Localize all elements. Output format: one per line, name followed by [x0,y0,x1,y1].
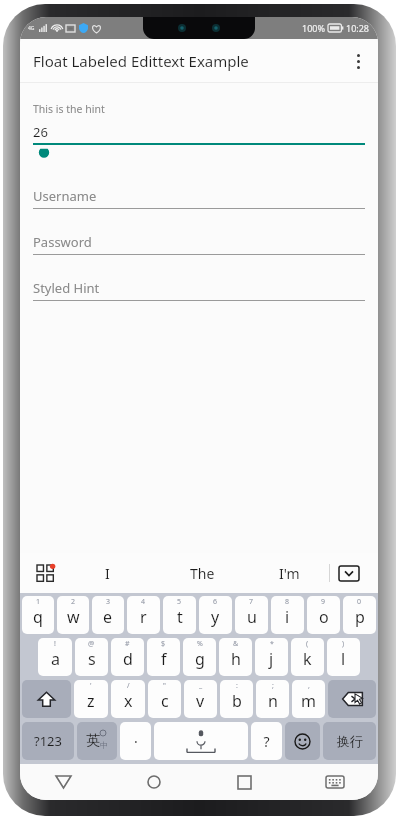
staticText: I [105,564,110,583]
staticText: 3 [106,597,111,607]
staticText: * [270,639,274,649]
staticText: ! [54,639,56,649]
staticText: 8 [285,597,290,607]
staticText: h [231,648,241,670]
staticText: w [67,606,80,628]
staticText: t [177,606,183,628]
staticText: 10:28 [346,22,370,34]
button[interactable]: ) [327,638,360,676]
staticText: Styled Hint [33,279,100,297]
staticText: 换行 [337,733,363,749]
button[interactable]: Recents [223,764,265,800]
staticText: i [285,606,290,628]
button[interactable]: & [219,638,252,676]
button[interactable]: % [183,638,216,676]
staticText: b [232,690,242,712]
staticText: 9 [321,597,326,607]
button[interactable]: @ [75,638,108,676]
button[interactable]: ?123 [22,722,74,760]
button[interactable]: I [60,553,155,593]
button[interactable]: 4 [127,596,160,634]
staticText: 英 [86,732,100,750]
staticText: : [236,681,238,691]
button[interactable]: " [148,680,181,718]
staticText: ?123 [34,732,62,750]
staticText: ) [342,639,345,649]
staticText: & [233,639,239,649]
staticText: f [161,648,167,670]
staticText: a [51,648,60,670]
staticText: ; [272,681,274,691]
button[interactable]: 2 [57,596,89,634]
staticText: j [269,648,274,670]
button[interactable]: The [155,553,249,593]
button[interactable]: Back [42,764,84,800]
button[interactable]: $ [147,638,180,676]
staticText: z [87,690,95,712]
staticText: 5 [177,597,182,607]
button[interactable]: # [111,638,144,676]
button[interactable]: ! [38,638,72,676]
button[interactable]: 9 [307,596,340,634]
button[interactable]: 0 [343,596,376,634]
button[interactable]: Language [77,722,117,760]
staticText: 6 [213,597,218,607]
staticText: m [301,690,316,712]
button[interactable]: Space [154,722,248,760]
button[interactable]: Password [33,233,365,255]
button[interactable]: 8 [271,596,304,634]
button[interactable]: · [120,722,151,760]
staticText: Float Labeled Edittext Example [33,51,249,71]
staticText: 100% [302,22,325,34]
button[interactable]: Shift [22,680,71,718]
button[interactable]: 3 [92,596,124,634]
button[interactable]: 6 [199,596,232,634]
staticText: , [308,681,310,691]
staticText: q [33,606,43,628]
button[interactable]: Hide keyboard [330,553,368,593]
staticText: · [134,732,138,751]
staticText: s [88,648,96,670]
button[interactable]: Home [133,764,175,800]
staticText: $ [161,639,166,649]
button[interactable]: 5 [163,596,196,634]
button[interactable]: 换行 [323,722,376,760]
button[interactable]: More options [338,41,378,81]
button[interactable]: This is the hint [33,102,365,161]
button[interactable]: Styled Hint [33,279,365,301]
button[interactable]: 7 [235,596,268,634]
button[interactable]: ( [291,638,324,676]
staticText: r [140,606,147,628]
button[interactable]: * [255,638,288,676]
staticText: 中 [100,740,108,750]
staticText: o [319,606,329,628]
button[interactable]: ? [251,722,282,760]
button[interactable]: Emoji [285,722,320,760]
staticText: d [123,648,133,670]
staticText: ? [263,732,270,751]
staticText: n [268,690,278,712]
staticText: / [127,681,130,691]
staticText: I'm [279,564,300,583]
button[interactable]: ; [256,680,289,718]
button[interactable]: : [220,680,253,718]
staticText: e [103,606,113,628]
button[interactable]: Switch keyboard [314,764,356,800]
button[interactable]: , [292,680,325,718]
staticText: 26 [33,123,48,141]
button[interactable]: 1 [22,596,54,634]
button[interactable]: / [111,680,145,718]
staticText: 2 [71,597,76,607]
staticText: " [163,681,166,691]
button[interactable]: Keyboard menu [30,558,60,588]
button[interactable]: I'm [249,553,329,593]
button[interactable]: _ [184,680,217,718]
staticText: 4G [28,25,35,32]
button[interactable]: Username [33,187,365,209]
staticText: ( [306,639,309,649]
button[interactable]: ' [74,680,108,718]
button[interactable]: Backspace [328,680,376,718]
staticText: Username [33,187,97,205]
staticText: y [211,606,220,628]
staticText: Password [33,233,92,251]
